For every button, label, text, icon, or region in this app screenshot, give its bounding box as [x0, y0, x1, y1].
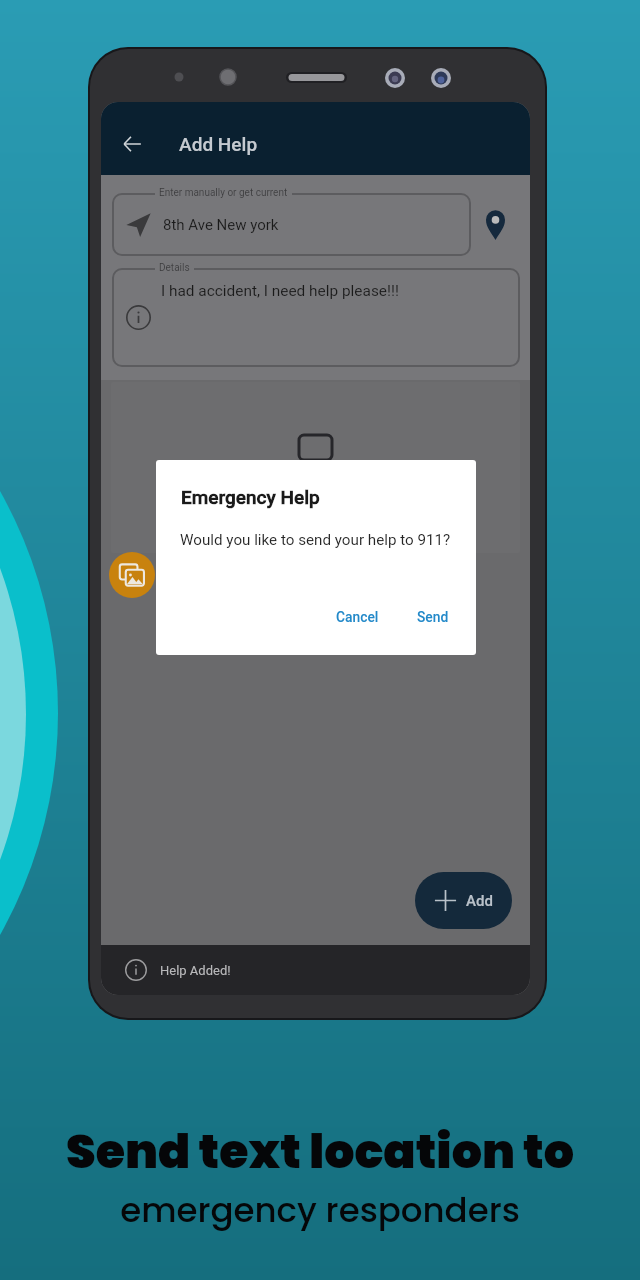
button[interactable]: Add — [415, 872, 512, 929]
staticText: Details — [159, 262, 190, 274]
staticText: Help Added! — [160, 963, 231, 978]
staticText: 8th Ave New york — [163, 216, 279, 234]
staticText: emergency responders — [120, 1186, 520, 1234]
button[interactable]: Back — [113, 125, 151, 163]
staticText: Cancel — [336, 609, 379, 625]
button[interactable]: Cancel — [328, 603, 387, 631]
button[interactable]: Get current location — [475, 200, 515, 249]
staticText: Send text location to — [66, 1118, 574, 1184]
button[interactable] — [111, 382, 520, 553]
staticText: Add — [466, 892, 493, 910]
staticText: I had accident, I need help please!!! — [161, 282, 399, 300]
staticText: Add Help — [179, 133, 258, 155]
staticText: Would you like to send your help to 911? — [180, 531, 451, 549]
button[interactable]: Send — [409, 603, 457, 631]
button[interactable]: Pick photo — [109, 552, 155, 598]
staticText: Enter manually or get current — [159, 187, 288, 199]
staticText: Send — [417, 609, 449, 625]
staticText: Emergency Help — [181, 486, 320, 508]
